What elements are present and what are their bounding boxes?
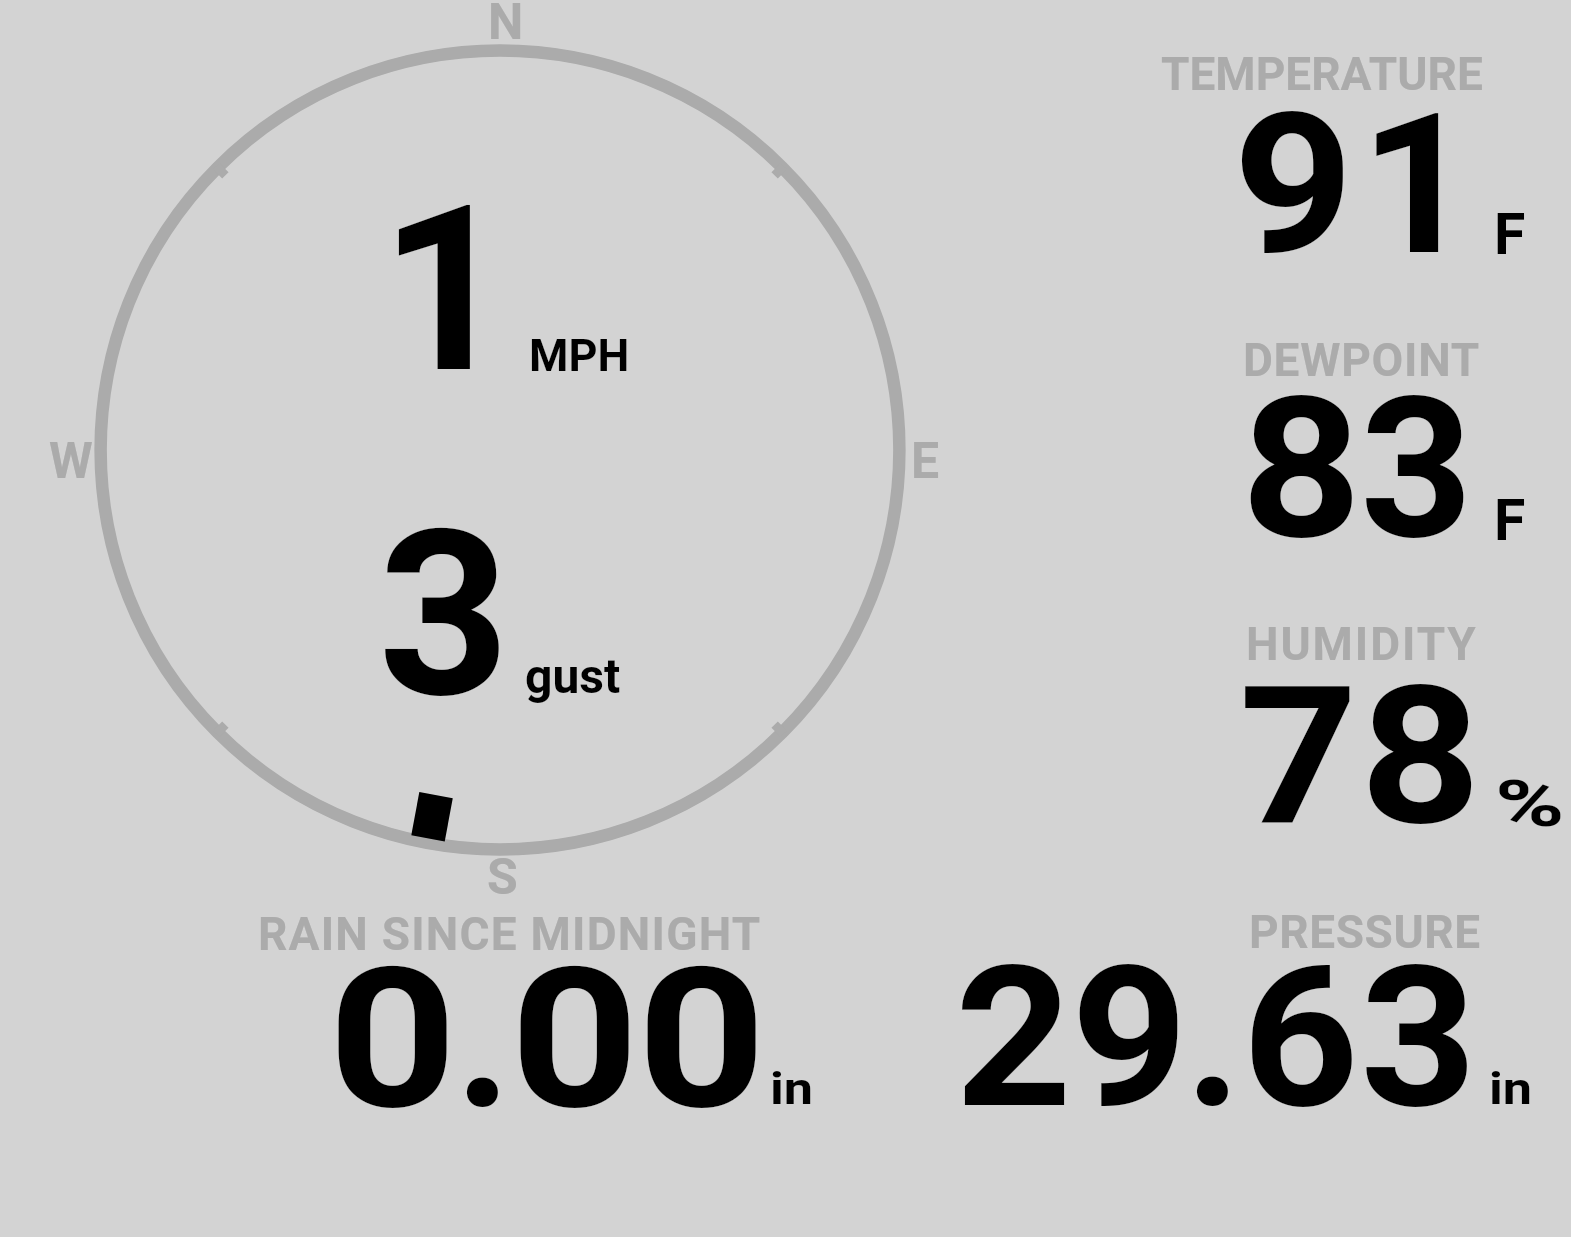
staticText: E	[911, 432, 940, 491]
staticText: 0	[637, 926, 767, 1153]
staticText: gust	[525, 648, 621, 704]
staticText: .	[1185, 925, 1242, 1152]
staticText: 1	[380, 156, 512, 426]
staticText: S	[487, 848, 518, 907]
staticText: 8	[1241, 356, 1363, 583]
staticText: 1	[1360, 72, 1475, 299]
staticText: F	[1494, 487, 1526, 554]
button[interactable]: Wind 1 miles per hour, gust 3	[96, 46, 904, 854]
staticText: 2	[955, 925, 1073, 1152]
staticText: F	[1494, 201, 1526, 268]
staticText: in	[770, 1062, 814, 1115]
button[interactable]: Rain since midnight 0.00 inches	[250, 895, 850, 1120]
staticText: 9	[1071, 925, 1189, 1152]
staticText: N	[488, 0, 524, 52]
staticText: .	[455, 926, 512, 1153]
staticText: 3	[1360, 925, 1478, 1152]
staticText: %	[1495, 767, 1566, 842]
button[interactable]: Dewpoint 83 degrees Fahrenheit	[1150, 325, 1571, 590]
button[interactable]: Humidity 78 percent	[1150, 610, 1571, 870]
staticText: in	[1489, 1062, 1533, 1115]
staticText: 9	[1233, 72, 1354, 299]
staticText: 7	[1239, 644, 1359, 869]
staticText: 6	[1242, 925, 1360, 1152]
staticText: W	[49, 432, 93, 491]
staticText: DEWPOINT	[1243, 333, 1480, 387]
staticText: PRESSURE	[1249, 905, 1481, 959]
staticText: 0	[328, 926, 458, 1153]
button[interactable]: Temperature 91 degrees Fahrenheit	[1150, 40, 1571, 310]
staticText: RAIN SINCE MIDNIGHT	[258, 907, 762, 961]
staticText: 8	[1360, 644, 1482, 869]
button[interactable]: Pressure 29.63 inches	[930, 895, 1571, 1120]
staticText: 3	[1360, 356, 1474, 583]
staticText: HUMIDITY	[1246, 617, 1478, 671]
staticText: MPH	[529, 329, 630, 382]
staticText: 3	[378, 481, 510, 751]
staticText: 0	[510, 926, 640, 1153]
staticText: TEMPERATURE	[1161, 47, 1483, 101]
